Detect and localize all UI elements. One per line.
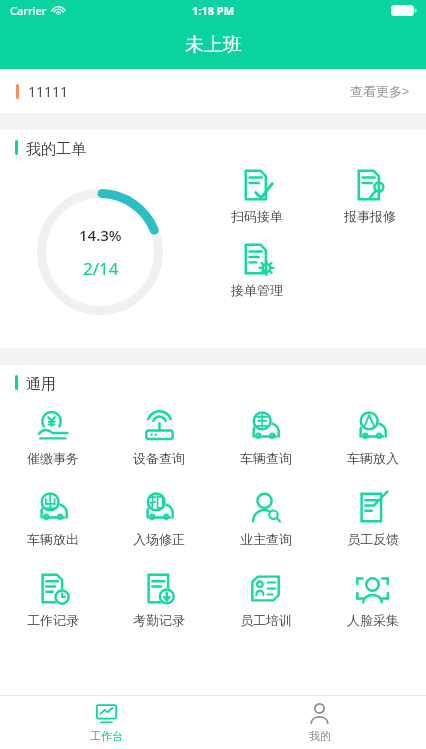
button[interactable]: 我的 — [213, 696, 426, 749]
button[interactable]: 车辆查询 — [212, 405, 319, 471]
staticText: 人脸采集 — [347, 612, 399, 628]
button[interactable]: 员工反馈 — [319, 486, 426, 552]
staticText: 车辆放出 — [27, 531, 79, 547]
button[interactable]: 11111 — [0, 69, 426, 113]
staticText: 车辆放入 — [347, 450, 399, 466]
staticText: 我的工单 — [26, 140, 86, 159]
staticText: 扫码接单 — [231, 208, 283, 224]
button[interactable]: 扫码接单 — [200, 166, 313, 226]
staticText: 2/14 — [83, 257, 119, 280]
staticText: 1:18 PM — [192, 3, 235, 18]
staticText: 我的 — [309, 729, 331, 743]
staticText: 考勤记录 — [133, 612, 185, 628]
staticText: 员工培训 — [240, 612, 292, 628]
button[interactable]: 业主查询 — [212, 486, 319, 552]
staticText: 车辆查询 — [240, 450, 292, 466]
staticText: 催缴事务 — [27, 450, 79, 466]
button[interactable]: 催缴事务 — [0, 405, 106, 471]
button[interactable]: 车辆放入 — [319, 405, 426, 471]
staticText: Carrier — [10, 3, 47, 18]
button[interactable]: 考勤记录 — [106, 567, 212, 633]
button[interactable]: 设备查询 — [106, 405, 212, 471]
staticText: 接单管理 — [231, 282, 283, 298]
button[interactable]: 员工培训 — [212, 567, 319, 633]
button[interactable]: 工作记录 — [0, 567, 106, 633]
button[interactable]: 入场修正 — [106, 486, 212, 552]
staticText: 设备查询 — [133, 450, 185, 466]
staticText: 通用 — [26, 375, 56, 394]
button[interactable]: 报事报修 — [313, 166, 426, 226]
staticText: 员工反馈 — [347, 531, 399, 547]
staticText: 工作台 — [90, 729, 123, 743]
staticText: 未上班 — [185, 33, 242, 57]
staticText: 工作记录 — [27, 612, 79, 628]
staticText: 入场修正 — [133, 531, 185, 547]
staticText: 11111 — [28, 82, 69, 101]
button[interactable]: 车辆放出 — [0, 486, 106, 552]
staticText: 报事报修 — [344, 208, 396, 224]
staticText: 业主查询 — [240, 531, 292, 547]
button[interactable]: 人脸采集 — [319, 567, 426, 633]
button[interactable]: 接单管理 — [200, 240, 313, 300]
button[interactable]: 工作台 — [0, 696, 213, 749]
staticText: 查看更多> — [350, 82, 410, 100]
staticText: 14.3% — [79, 225, 122, 245]
